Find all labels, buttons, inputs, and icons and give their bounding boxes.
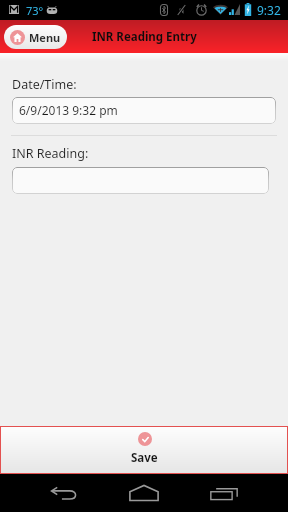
staticText: 73°	[26, 3, 44, 18]
button[interactable]: Menu	[4, 25, 67, 49]
staticText: INR Reading Entry	[92, 29, 197, 45]
button[interactable]: Back	[24, 474, 104, 512]
button[interactable]: Save	[1, 427, 287, 473]
staticText: INR Reading:	[12, 145, 89, 162]
button[interactable]	[12, 167, 269, 194]
staticText: 6/9/2013 9:32 pm	[19, 102, 118, 118]
button[interactable]: Home	[104, 474, 184, 512]
button[interactable]: 6/9/2013 9:32 pm	[12, 97, 276, 124]
staticText: 9:32	[257, 2, 281, 18]
staticText: Menu	[29, 30, 61, 45]
button[interactable]: Recents	[184, 474, 264, 512]
staticText: Save	[131, 450, 158, 466]
staticText: Date/Time:	[12, 76, 77, 93]
